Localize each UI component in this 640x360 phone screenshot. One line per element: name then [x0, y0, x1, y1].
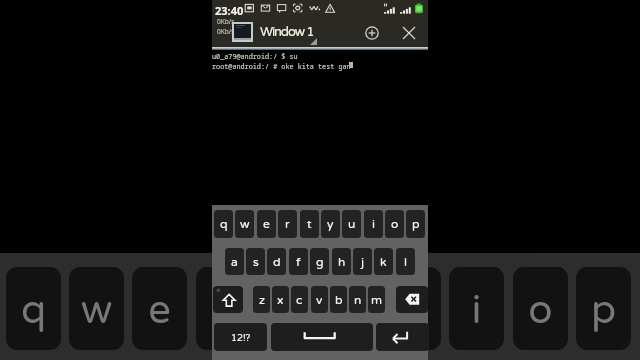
staticText: 12!? [231, 332, 251, 343]
staticText: q [220, 217, 228, 231]
staticText: l [404, 255, 407, 269]
staticText: c [296, 293, 303, 307]
button[interactable]: j [353, 248, 372, 275]
staticText: k [380, 255, 387, 269]
staticText: t [259, 286, 314, 334]
staticText: h [338, 255, 346, 269]
staticText: x [277, 293, 284, 307]
staticText: b [335, 293, 343, 307]
button[interactable]: q [214, 210, 233, 238]
button[interactable]: k [374, 248, 393, 275]
staticText: e [132, 286, 187, 334]
staticText: o [513, 286, 568, 334]
staticText: a [231, 255, 238, 269]
button[interactable]: e [257, 210, 276, 238]
staticText: r [285, 217, 290, 231]
button[interactable]: v [311, 286, 328, 313]
button[interactable]: c [291, 286, 308, 313]
button[interactable]: a [225, 248, 244, 275]
staticText: d [273, 255, 281, 269]
button[interactable]: Backspace [396, 286, 428, 313]
staticText: p [576, 286, 631, 334]
button[interactable]: z [253, 286, 270, 313]
button[interactable]: 12!? [214, 323, 267, 351]
staticText: s [253, 255, 259, 269]
staticText: u0_a79@android:/ $ su [212, 52, 298, 61]
staticText: v [316, 293, 323, 307]
staticText: i [372, 217, 375, 231]
staticText: i [449, 286, 504, 334]
button[interactable]: h [332, 248, 351, 275]
button[interactable]: d [267, 248, 286, 275]
staticText: y [323, 286, 378, 334]
staticText: o [391, 217, 399, 231]
staticText: g [316, 255, 324, 269]
button[interactable]: Space [271, 323, 373, 351]
staticText: f [296, 255, 301, 269]
staticText: 0Kb/s [217, 17, 235, 26]
button[interactable]: g [310, 248, 329, 275]
staticText: z [259, 293, 265, 307]
button[interactable]: m [368, 286, 385, 313]
button[interactable]: x [272, 286, 289, 313]
staticText: n [354, 293, 362, 307]
button[interactable]: n [349, 286, 366, 313]
staticText: w [240, 217, 250, 231]
staticText: j [361, 255, 365, 269]
staticText: 23:40 [215, 3, 244, 18]
staticText: r [196, 286, 251, 334]
button[interactable]: Enter [376, 323, 429, 351]
staticText: u [348, 217, 356, 231]
button[interactable]: Window 1 [256, 17, 360, 48]
staticText: Window 1 [260, 24, 314, 40]
button[interactable]: s [246, 248, 265, 275]
staticText: q [6, 286, 61, 334]
staticText: e [263, 217, 270, 231]
staticText: t [307, 217, 312, 231]
button[interactable]: u [342, 210, 361, 238]
button[interactable]: Shift [213, 286, 243, 313]
staticText: root@android:/ # oke kita test gan [212, 62, 351, 71]
staticText: y [327, 217, 334, 231]
button[interactable]: r [278, 210, 297, 238]
button[interactable]: l [396, 248, 415, 275]
button[interactable]: w [235, 210, 254, 238]
staticText: m [371, 293, 383, 307]
button[interactable]: y [321, 210, 340, 238]
button[interactable]: p [406, 210, 425, 238]
button[interactable]: i [364, 210, 383, 238]
staticText: u [386, 286, 441, 334]
button[interactable]: Close window [393, 17, 425, 48]
staticText: w [69, 286, 124, 334]
staticText: p [412, 217, 420, 231]
button[interactable]: f [289, 248, 308, 275]
button[interactable]: b [330, 286, 347, 313]
staticText: 0Kb/s [217, 27, 235, 36]
button[interactable]: o [385, 210, 404, 238]
button[interactable]: New window [353, 17, 390, 48]
button[interactable]: t [300, 210, 319, 238]
